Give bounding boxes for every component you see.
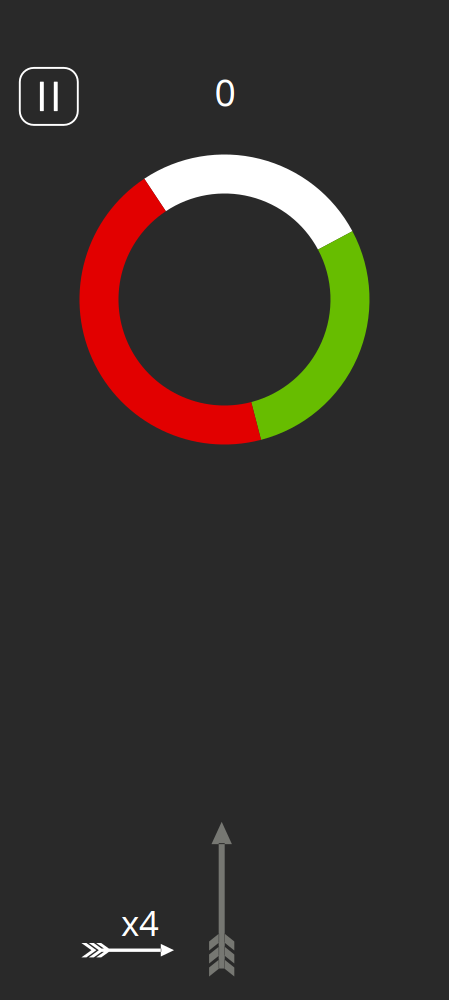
button[interactable]: Pause: [20, 68, 78, 125]
staticText: x4: [121, 899, 159, 945]
staticText: 0: [214, 67, 235, 117]
